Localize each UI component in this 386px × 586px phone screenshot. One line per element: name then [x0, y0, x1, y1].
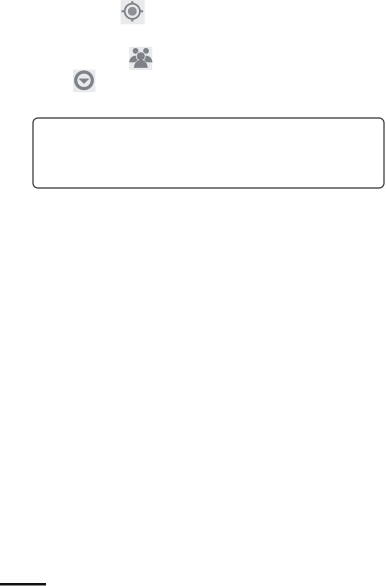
button[interactable]: Collapse — [73, 70, 95, 92]
button[interactable]: Location — [121, 0, 145, 24]
button[interactable]: Text field — [33, 118, 384, 188]
button[interactable]: People — [129, 47, 152, 70]
